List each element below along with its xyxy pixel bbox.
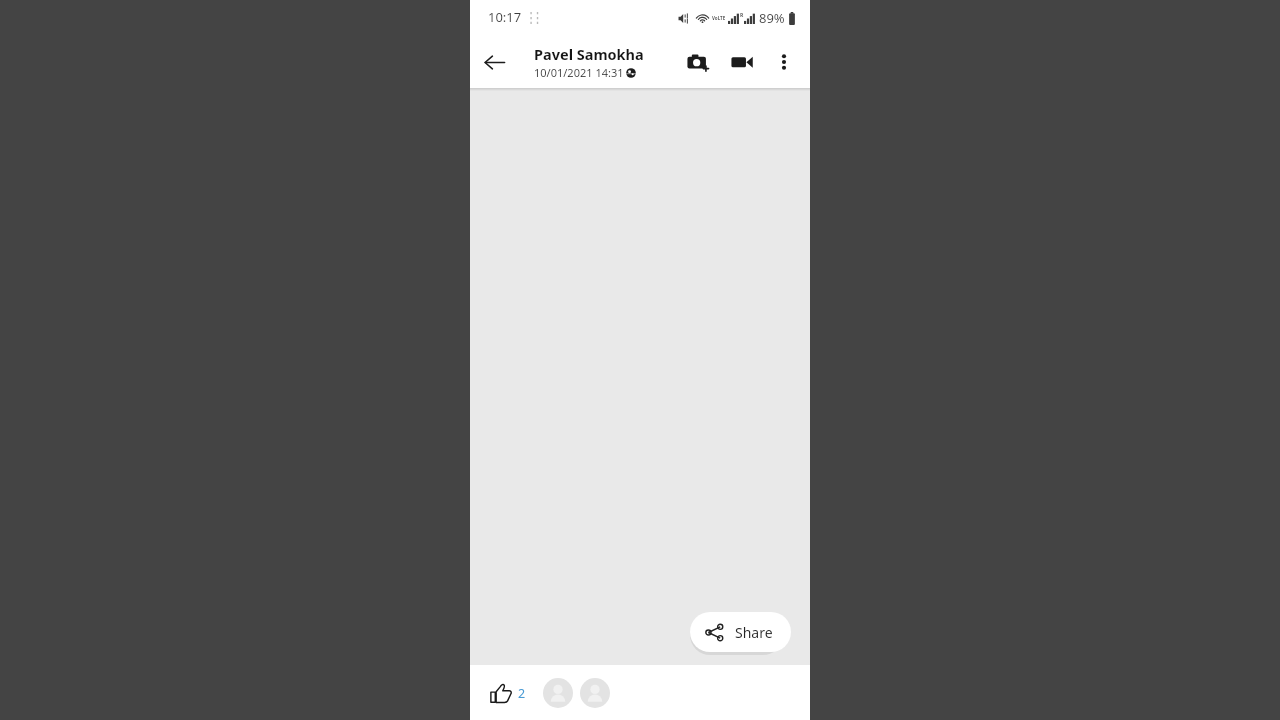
staticText: VoLTE	[712, 15, 726, 21]
button[interactable]: Participant	[580, 678, 610, 708]
button[interactable]: 2	[486, 676, 530, 710]
button[interactable]: Participant	[543, 678, 573, 708]
button[interactable]: More options	[764, 42, 804, 82]
button[interactable]: Take photo	[676, 40, 720, 84]
staticText: Share	[735, 623, 773, 642]
staticText: 10:17	[488, 8, 522, 26]
button[interactable]: Record video	[720, 40, 764, 84]
staticText: 10/01/2021 14:31	[534, 65, 624, 80]
staticText: 2	[518, 685, 526, 702]
button[interactable]: Share	[690, 612, 791, 652]
staticText: 89%	[759, 9, 785, 27]
staticText: R	[740, 12, 744, 19]
staticText: Pavel Samokha	[534, 44, 644, 64]
button[interactable]: Back	[470, 38, 518, 86]
